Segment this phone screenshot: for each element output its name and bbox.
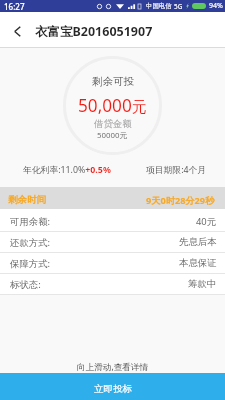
button[interactable]: 立即投标 xyxy=(0,373,225,400)
button[interactable]: Back xyxy=(1,15,34,48)
staticText: 年化利率:11.0%+0.5% xyxy=(23,164,111,176)
staticText: 剩余可投 xyxy=(92,75,134,88)
button[interactable]: 还款方式: xyxy=(0,232,225,252)
staticText: 40元 xyxy=(196,215,217,228)
staticText: 先息后本 xyxy=(179,236,217,248)
staticText: 5G xyxy=(174,2,183,11)
staticText: 50000元 xyxy=(97,130,128,141)
button[interactable]: 可用余额: xyxy=(0,211,225,231)
staticText: 筹款中 xyxy=(188,278,217,290)
staticText: 还款方式: xyxy=(10,236,51,249)
staticText: 向上滑动,查看详情 xyxy=(77,361,149,373)
staticText: 剩余时间 xyxy=(8,194,46,206)
staticText: 衣富宝B2016051907 xyxy=(35,23,153,40)
staticText: 项目期限:4个月 xyxy=(146,164,207,176)
staticText: 保障方式: xyxy=(10,257,51,270)
button[interactable]: 保障方式: xyxy=(0,253,225,273)
staticText: 可用余额: xyxy=(10,215,51,228)
staticText: 9天0时28分29秒 xyxy=(146,194,215,207)
staticText: 94% xyxy=(209,1,223,11)
staticText: 16:27 xyxy=(4,1,25,12)
staticText: 借贷金额 xyxy=(94,118,132,130)
staticText: 中国电信 xyxy=(146,2,172,10)
staticText: 50,000元 xyxy=(78,94,147,117)
button[interactable]: 标状态: xyxy=(0,274,225,294)
staticText: 立即投标 xyxy=(94,383,132,395)
staticText: 本息保证 xyxy=(179,257,217,269)
staticText: 标状态: xyxy=(10,278,41,291)
